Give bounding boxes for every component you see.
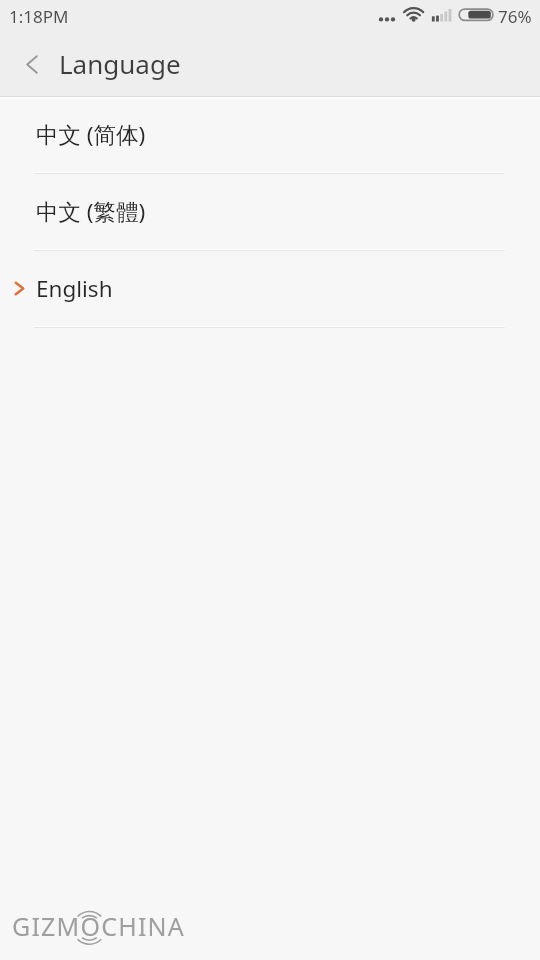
button[interactable]: 中文 (繁體) <box>0 174 540 249</box>
staticText: 中文 (繁體) <box>36 196 146 227</box>
staticText: 1:18PM <box>9 5 69 28</box>
staticText: GIZMOCHINA <box>12 909 185 943</box>
button[interactable]: 中文 (简体) <box>0 97 540 172</box>
button[interactable]: English <box>0 251 540 326</box>
button[interactable]: Back <box>4 33 60 95</box>
staticText: 76% <box>498 5 532 28</box>
staticText: 中文 (简体) <box>36 119 146 150</box>
staticText: English <box>36 273 113 304</box>
staticText: Language <box>59 46 181 81</box>
